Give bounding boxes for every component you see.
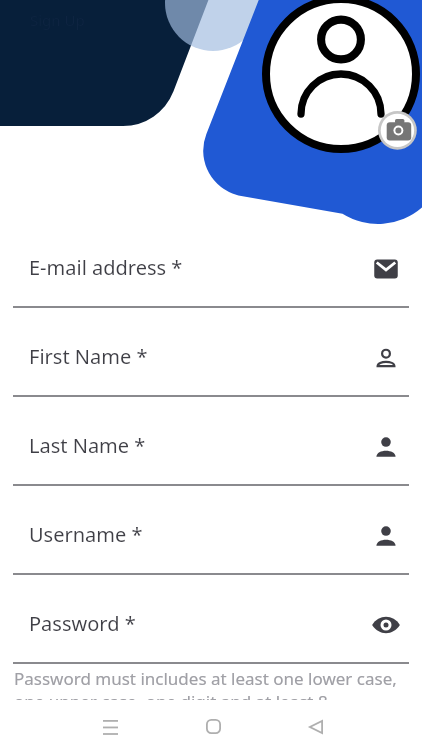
button[interactable]: Username * [0, 486, 422, 575]
staticText: First Name * [29, 343, 148, 370]
staticText: Password * [29, 610, 136, 637]
button[interactable]: Last Name * [0, 397, 422, 486]
button[interactable]: Recent apps [92, 708, 129, 745]
staticText: Last Name * [29, 432, 146, 459]
button[interactable]: E-mail address * [0, 219, 422, 308]
staticText: Password must includes at least one lowe… [14, 667, 412, 736]
staticText: Username * [29, 521, 143, 548]
button[interactable]: Change profile photo [378, 111, 417, 150]
button[interactable]: Back [297, 708, 334, 745]
button[interactable]: Password * [0, 575, 422, 664]
staticText: E-mail address * [29, 254, 183, 281]
button[interactable]: Home [195, 708, 232, 745]
button[interactable]: First Name * [0, 308, 422, 397]
